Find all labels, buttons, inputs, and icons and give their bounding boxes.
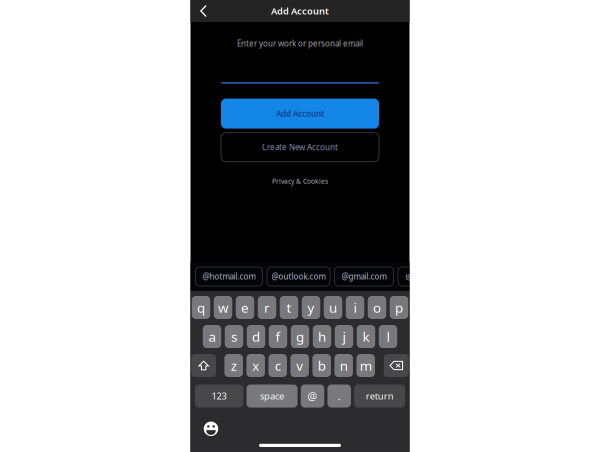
button[interactable]: space — [247, 384, 298, 407]
staticText: k — [362, 328, 369, 345]
button[interactable]: m — [356, 354, 375, 377]
staticText: q — [197, 299, 205, 316]
button[interactable]: 123 — [195, 384, 243, 407]
staticText: l — [386, 328, 389, 345]
staticText: g — [296, 328, 304, 345]
staticText: n — [340, 357, 348, 374]
button[interactable]: e — [236, 296, 254, 319]
staticText: x — [252, 357, 259, 374]
staticText: Privacy & Cookies — [272, 177, 328, 185]
button[interactable]: n — [334, 354, 353, 377]
staticText: i — [353, 299, 356, 316]
button[interactable]: k — [357, 325, 375, 348]
button[interactable]: f — [269, 325, 287, 348]
button[interactable]: s — [225, 325, 243, 348]
staticText: w — [218, 299, 228, 316]
staticText: 123 — [212, 390, 227, 402]
button[interactable]: @outlook.com — [267, 267, 330, 286]
button[interactable]: l — [379, 325, 397, 348]
staticText: Enter your work or personal email — [237, 38, 363, 49]
button[interactable]: w — [214, 296, 232, 319]
staticText: u — [329, 299, 337, 316]
button[interactable]: @hotmail.com — [195, 267, 262, 286]
staticText: t — [286, 299, 291, 316]
staticText: @ — [307, 389, 317, 403]
button[interactable]: return — [354, 384, 405, 407]
button[interactable]: b — [312, 354, 331, 377]
button[interactable]: i — [346, 296, 364, 319]
staticText: j — [342, 328, 345, 345]
button[interactable]: x — [246, 354, 265, 377]
button[interactable]: p — [390, 296, 408, 319]
staticText: d — [252, 328, 260, 345]
button[interactable]: r — [258, 296, 276, 319]
staticText: v — [296, 357, 303, 374]
staticText: h — [318, 328, 326, 345]
staticText: @gmail.com — [341, 271, 386, 282]
button[interactable]: t — [280, 296, 298, 319]
staticText: y — [307, 299, 314, 316]
button[interactable]: Add Account — [221, 99, 379, 129]
staticText: Add Account — [276, 108, 324, 119]
staticText: return — [366, 390, 394, 402]
button[interactable]: q — [192, 296, 210, 319]
staticText: @outlook.com — [271, 271, 325, 282]
staticText: a — [208, 328, 215, 345]
button[interactable]: Shift — [191, 354, 216, 377]
staticText: Add Account — [271, 5, 329, 17]
staticText: p — [395, 299, 403, 316]
button[interactable]: c — [268, 354, 287, 377]
button[interactable]: h — [313, 325, 331, 348]
staticText: r — [264, 299, 270, 316]
button[interactable]: a — [203, 325, 221, 348]
button[interactable]: Emoji — [200, 418, 222, 440]
staticText: m — [360, 357, 372, 374]
button[interactable]: u — [324, 296, 342, 319]
staticText: s — [231, 328, 237, 345]
staticText: space — [260, 390, 284, 402]
button[interactable]: @y — [398, 267, 424, 286]
button[interactable]: y — [302, 296, 320, 319]
staticText: z — [231, 357, 237, 374]
button[interactable]: @gmail.com — [334, 267, 393, 286]
button[interactable]: d — [247, 325, 265, 348]
button[interactable]: g — [291, 325, 309, 348]
button[interactable]: Privacy & Cookies — [266, 174, 334, 188]
button[interactable]: o — [368, 296, 386, 319]
staticText: @hotmail.com — [202, 271, 255, 282]
button[interactable]: j — [335, 325, 353, 348]
button[interactable]: @ — [301, 384, 324, 407]
staticText: e — [241, 299, 249, 316]
button[interactable]: Create New Account — [221, 133, 379, 162]
staticText: o — [373, 299, 381, 316]
button[interactable]: Delete — [384, 354, 409, 377]
staticText: . — [338, 389, 341, 403]
button[interactable]: . — [327, 384, 351, 407]
staticText: f — [275, 328, 280, 345]
staticText: Create New Account — [262, 142, 338, 152]
staticText: c — [275, 357, 281, 374]
staticText: @y — [405, 271, 416, 282]
button[interactable]: v — [290, 354, 309, 377]
staticText: b — [318, 357, 326, 374]
button[interactable]: Back — [190, 0, 216, 22]
button[interactable]: z — [224, 354, 243, 377]
